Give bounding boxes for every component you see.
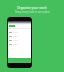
staticText: Keep every task in one place <box>15 10 50 14</box>
button[interactable] <box>8 34 31 38</box>
button[interactable] <box>8 30 31 34</box>
button[interactable] <box>8 38 31 42</box>
button[interactable] <box>8 42 31 46</box>
staticText: Organize your work <box>17 6 47 10</box>
